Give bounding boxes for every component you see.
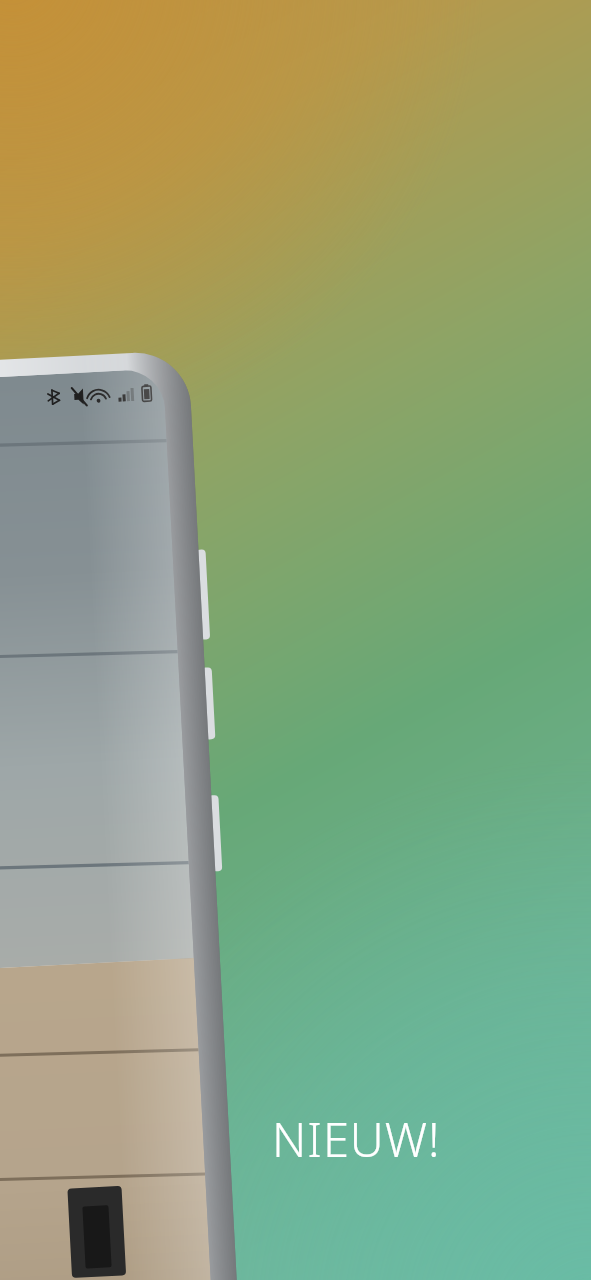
button[interactable]: NIEUW! [272, 1107, 441, 1171]
staticText: NIEUW! [272, 1107, 441, 1171]
